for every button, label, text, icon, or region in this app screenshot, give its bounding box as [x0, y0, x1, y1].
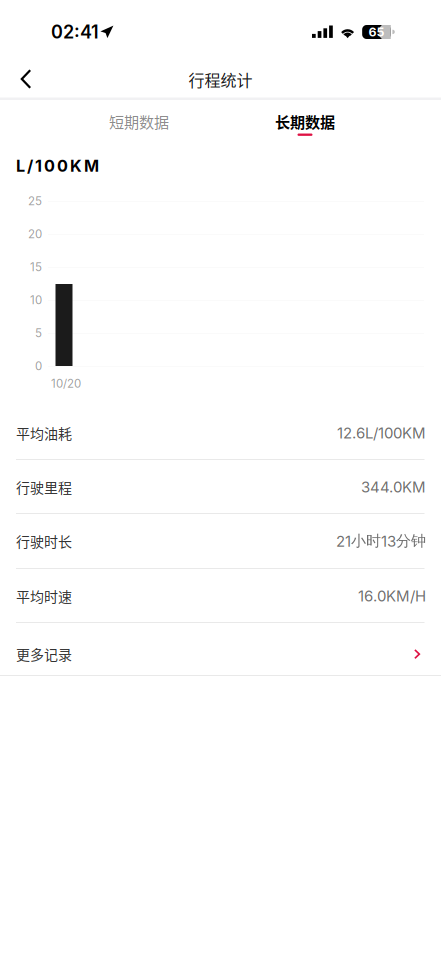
- staticText: 12.6L/100KM: [337, 424, 426, 442]
- button[interactable]: 行驶时长: [0, 514, 441, 569]
- button[interactable]: 平均油耗: [0, 406, 441, 460]
- button[interactable]: 短期数据: [79, 100, 199, 145]
- staticText: 行驶里程: [16, 477, 72, 497]
- staticText: 更多记录: [16, 644, 72, 664]
- staticText: 16.0KM/H: [358, 587, 426, 605]
- button[interactable]: 长期数据: [245, 100, 365, 145]
- staticText: 行程统计: [188, 68, 252, 91]
- staticText: 5: [35, 326, 42, 340]
- staticText: 344.0KM: [361, 478, 426, 496]
- button[interactable]: 更多记录: [0, 623, 441, 676]
- staticText: 10/20: [51, 376, 81, 390]
- staticText: 10: [30, 293, 42, 307]
- staticText: 65: [368, 24, 384, 39]
- staticText: 21小时13分钟: [336, 532, 426, 550]
- staticText: 行驶时长: [16, 531, 72, 551]
- staticText: 短期数据: [109, 111, 169, 132]
- staticText: 平均时速: [16, 586, 72, 606]
- staticText: L/100KM: [16, 156, 99, 176]
- button[interactable]: 行驶里程: [0, 460, 441, 514]
- staticText: 0: [35, 359, 42, 373]
- staticText: 02:41: [51, 21, 99, 43]
- staticText: 25: [28, 194, 42, 208]
- staticText: 长期数据: [275, 111, 335, 132]
- button[interactable]: Back: [4, 57, 48, 101]
- staticText: 15: [30, 260, 42, 274]
- button[interactable]: 平均时速: [0, 569, 441, 623]
- staticText: 平均油耗: [16, 423, 72, 443]
- staticText: 20: [28, 227, 42, 241]
